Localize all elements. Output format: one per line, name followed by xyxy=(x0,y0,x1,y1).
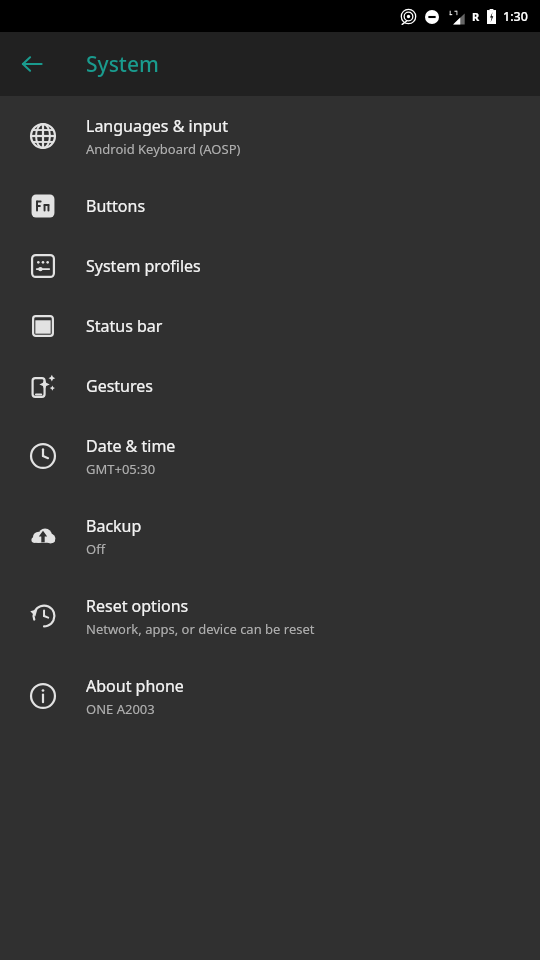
button[interactable]: Reset options xyxy=(0,576,540,656)
staticText: Backup xyxy=(86,515,142,537)
staticText: System profiles xyxy=(86,255,201,277)
staticText: 1:30 xyxy=(503,8,528,25)
button[interactable]: Status bar xyxy=(0,296,540,356)
staticText: Gestures xyxy=(86,375,153,397)
button[interactable]: Backup xyxy=(0,496,540,576)
button[interactable]: Back xyxy=(10,42,54,86)
button[interactable]: System profiles xyxy=(0,236,540,296)
staticText: System xyxy=(86,50,159,79)
staticText: R xyxy=(472,9,480,24)
button[interactable]: About phone xyxy=(0,656,540,736)
staticText: Date & time xyxy=(86,435,176,457)
button[interactable]: Buttons xyxy=(0,176,540,236)
staticText: GMT+05:30 xyxy=(86,460,156,478)
button[interactable]: Date & time xyxy=(0,416,540,496)
staticText: Languages & input xyxy=(86,115,229,137)
staticText: ONE A2003 xyxy=(86,700,155,718)
staticText: Status bar xyxy=(86,315,163,337)
button[interactable]: Gestures xyxy=(0,356,540,416)
staticText: Reset options xyxy=(86,595,189,617)
staticText: Network, apps, or device can be reset xyxy=(86,620,315,638)
staticText: Buttons xyxy=(86,195,146,217)
staticText: Off xyxy=(86,540,106,558)
staticText: About phone xyxy=(86,675,184,697)
staticText: Android Keyboard (AOSP) xyxy=(86,140,241,158)
button[interactable]: Languages & input xyxy=(0,96,540,176)
